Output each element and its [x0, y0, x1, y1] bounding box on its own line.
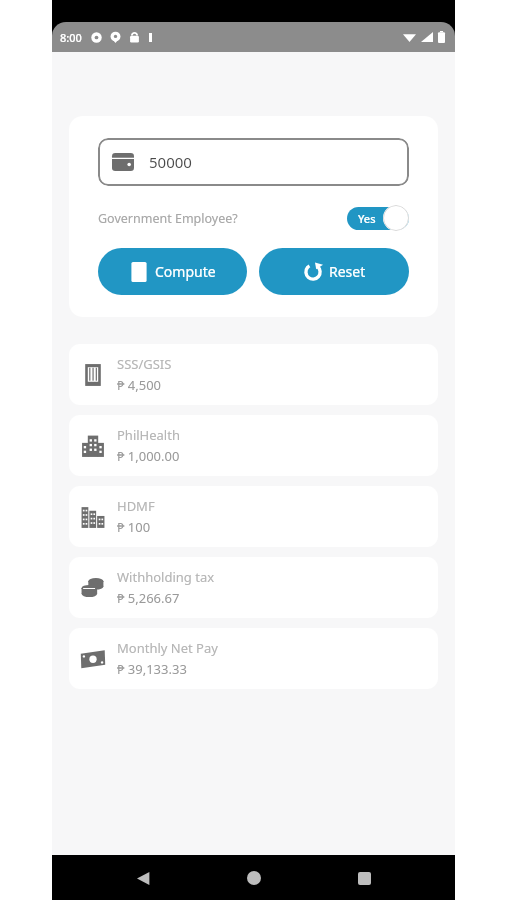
staticText: ₱ 4,500	[117, 376, 162, 394]
staticText: ₱ 1,000.00	[117, 447, 180, 465]
staticText: ₱ 39,133.33	[117, 660, 187, 678]
button[interactable]: Government employee toggle	[347, 205, 409, 231]
staticText: ₱ 5,266.67	[117, 589, 180, 607]
staticText: ₱ 100	[117, 518, 151, 536]
staticText: Reset	[329, 262, 366, 281]
staticText: Compute	[155, 262, 216, 281]
staticText: Withholding tax	[117, 568, 215, 586]
staticText: Government Employee?	[98, 210, 238, 227]
staticText: Monthly Net Pay	[117, 639, 218, 657]
button[interactable]: Withholding tax	[69, 557, 438, 618]
staticText: Yes	[358, 211, 376, 226]
button[interactable]: Reset	[259, 248, 409, 295]
button[interactable]: Compute	[98, 248, 247, 295]
button[interactable]: Back	[123, 858, 163, 898]
button[interactable]: Monthly Net Pay	[69, 628, 438, 689]
staticText: SSS/GSIS	[117, 355, 172, 373]
button[interactable]: PhilHealth	[69, 415, 438, 476]
button[interactable]: 50000	[98, 138, 409, 186]
staticText: 50000	[149, 152, 192, 172]
staticText: PhilHealth	[117, 426, 180, 444]
button[interactable]: Home	[234, 858, 274, 898]
staticText: 8:00	[60, 30, 82, 45]
button[interactable]: Recents	[344, 858, 384, 898]
button[interactable]: HDMF	[69, 486, 438, 547]
staticText: HDMF	[117, 497, 155, 515]
button[interactable]: SSS/GSIS	[69, 344, 438, 405]
